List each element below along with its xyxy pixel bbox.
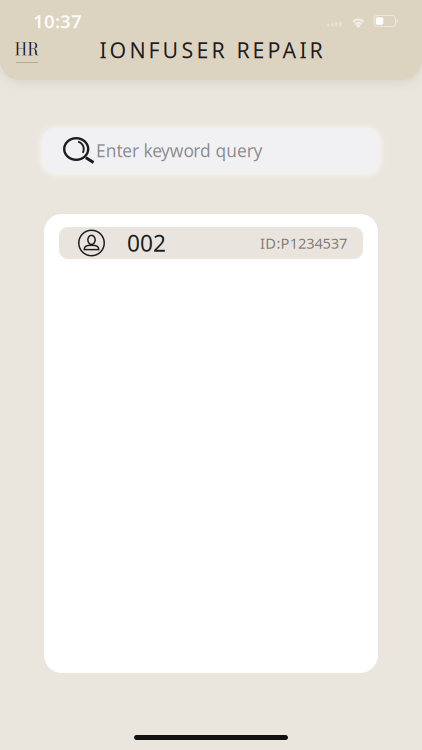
staticText: 002 (127, 228, 166, 258)
staticText: ID:P1234537 (260, 233, 347, 253)
staticText: 10:37 (33, 9, 82, 33)
button[interactable]: Enter keyword query (42, 128, 380, 173)
button[interactable]: 002 (59, 227, 363, 259)
staticText: Enter keyword query (96, 139, 262, 162)
staticText: HR (15, 37, 39, 61)
staticText: IONFUSER REPAIR (99, 36, 322, 64)
